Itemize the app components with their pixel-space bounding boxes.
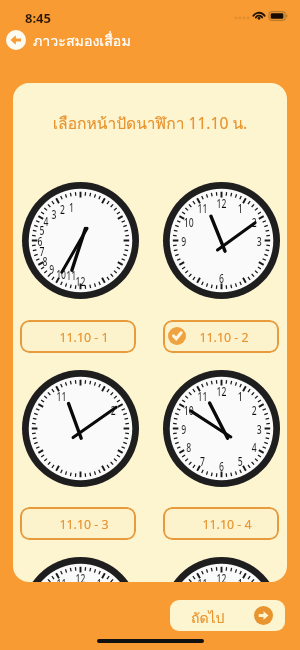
staticText: 11.10 - 1 [26,329,136,346]
button[interactable]: ถัดไป [170,600,285,631]
button[interactable]: Back [3,27,29,53]
staticText: 8:45 [25,9,51,27]
staticText: ภาวะสมองเสื่อม [33,30,131,53]
button[interactable]: 11.10 - 4 [163,507,279,540]
button[interactable]: 11.10 - 3 [20,507,136,540]
staticText: 11.10 - 3 [26,516,136,533]
staticText: เลือกหน้าปัดนาฬิกา 11.10 น. [13,111,287,136]
button[interactable]: 11.10 - 2 [163,320,279,353]
staticText: ถัดไป [191,607,225,629]
staticText: 11.10 - 4 [169,516,279,533]
staticText: 11.10 - 2 [166,329,279,346]
button[interactable]: 11.10 - 1 [20,320,136,353]
